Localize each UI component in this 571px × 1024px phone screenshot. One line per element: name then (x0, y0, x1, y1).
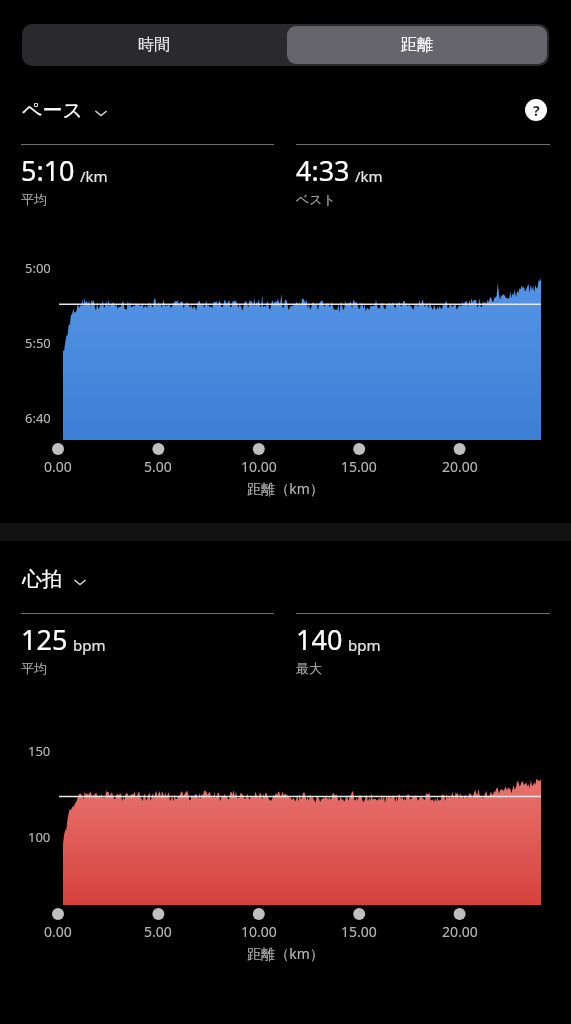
staticText: 15.00 (341, 457, 377, 476)
staticText: 距離（km） (247, 479, 324, 498)
staticText: 15.00 (341, 922, 377, 941)
staticText: 平均 (21, 660, 47, 676)
button[interactable]: 125 (21, 613, 274, 676)
staticText: /km (80, 166, 108, 186)
button[interactable]: 距離 (287, 26, 547, 64)
staticText: 20.00 (442, 457, 478, 476)
staticText: 5:00 (25, 259, 51, 277)
button[interactable]: 4:33 (296, 144, 550, 207)
staticText: 距離 (401, 35, 433, 55)
staticText: 150 (28, 742, 51, 760)
button[interactable]: 心拍 (22, 567, 90, 592)
staticText: ? (533, 101, 540, 120)
staticText: 10.00 (241, 922, 277, 941)
staticText: ベスト (296, 191, 336, 207)
staticText: 4:33 (296, 152, 350, 189)
button[interactable]: 5:10 (21, 144, 274, 207)
staticText: 時間 (138, 35, 170, 55)
button[interactable]: ペース (22, 98, 111, 123)
button[interactable]: 時間 (22, 24, 285, 66)
staticText: 5:50 (25, 334, 51, 352)
staticText: 距離（km） (247, 944, 324, 963)
staticText: 心拍 (22, 567, 62, 592)
staticText: bpm (73, 635, 106, 655)
staticText: 140 (296, 621, 343, 658)
staticText: 6:40 (25, 409, 51, 427)
staticText: 5.00 (144, 457, 172, 476)
staticText: 20.00 (442, 922, 478, 941)
staticText: 5.00 (144, 922, 172, 941)
staticText: ペース (22, 98, 83, 123)
staticText: 100 (28, 828, 51, 846)
staticText: 5:10 (21, 152, 75, 189)
staticText: bpm (348, 635, 381, 655)
staticText: 最大 (296, 660, 322, 676)
staticText: 0.00 (44, 922, 72, 941)
button[interactable]: 140 (296, 613, 550, 676)
staticText: 0.00 (44, 457, 72, 476)
staticText: 平均 (21, 191, 47, 207)
staticText: 125 (21, 621, 68, 658)
staticText: 10.00 (241, 457, 277, 476)
staticText: /km (355, 166, 383, 186)
button[interactable]: ヘルプ (521, 95, 551, 125)
